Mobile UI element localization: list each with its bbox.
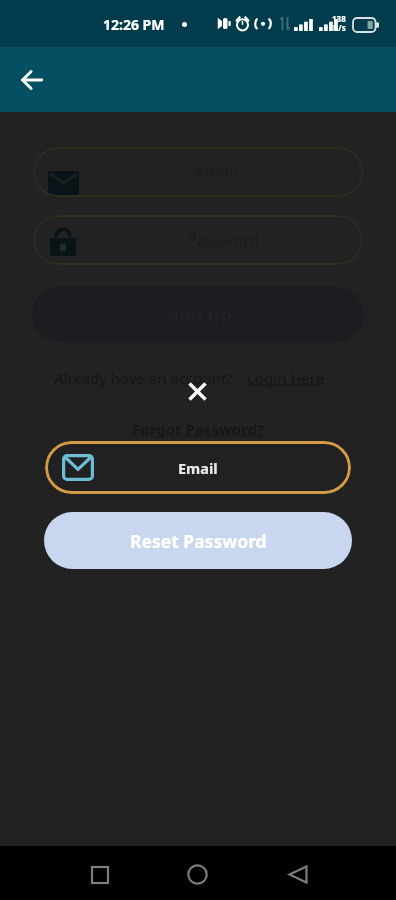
button[interactable]: Forgot Password?: [132, 419, 265, 439]
button[interactable]: Email: [33, 147, 363, 197]
button[interactable]: Back: [10, 58, 53, 101]
button[interactable]: Close: [180, 374, 214, 408]
staticText: Email: [178, 458, 218, 478]
button[interactable]: Password: [33, 215, 363, 265]
staticText: Reset Password: [130, 529, 267, 553]
staticText: B/s: [333, 22, 346, 33]
button[interactable]: Login Here: [247, 368, 325, 388]
staticText: 12:26 PM: [103, 15, 165, 34]
staticText: 138: [332, 13, 346, 24]
staticText: Forgot Password?: [132, 419, 265, 439]
button[interactable]: Reset Password: [44, 512, 352, 569]
staticText: Login Here: [247, 368, 325, 388]
staticText: Already have an account?: [54, 368, 233, 388]
button[interactable]: Back: [272, 849, 323, 900]
button[interactable]: Home: [172, 849, 223, 900]
button[interactable]: Recents: [74, 849, 125, 900]
button[interactable]: Email: [45, 441, 351, 494]
